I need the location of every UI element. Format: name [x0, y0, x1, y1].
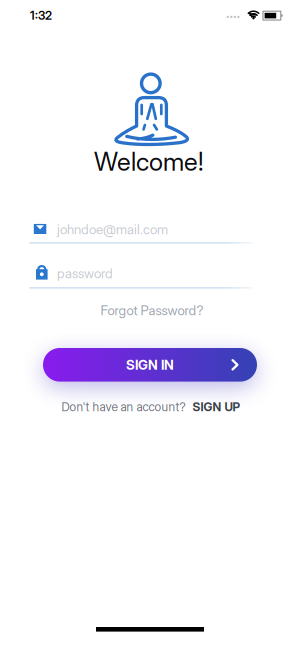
- staticText: SIGN UP: [192, 400, 240, 414]
- button[interactable]: SIGN IN: [43, 348, 257, 382]
- button[interactable]: Forgot Password?: [100, 303, 203, 318]
- button[interactable]: Email address: [29, 212, 253, 244]
- staticText: Don't have an account?: [61, 400, 185, 414]
- button[interactable]: SIGN UP: [192, 400, 240, 414]
- staticText: SIGN IN: [126, 357, 174, 373]
- staticText: Forgot Password?: [100, 303, 203, 318]
- staticText: Welcome!: [94, 147, 204, 176]
- staticText: password: [57, 265, 113, 281]
- staticText: 1:32: [30, 8, 52, 23]
- staticText: johndoe@mail.com: [57, 221, 168, 237]
- button[interactable]: Password: [29, 257, 253, 289]
